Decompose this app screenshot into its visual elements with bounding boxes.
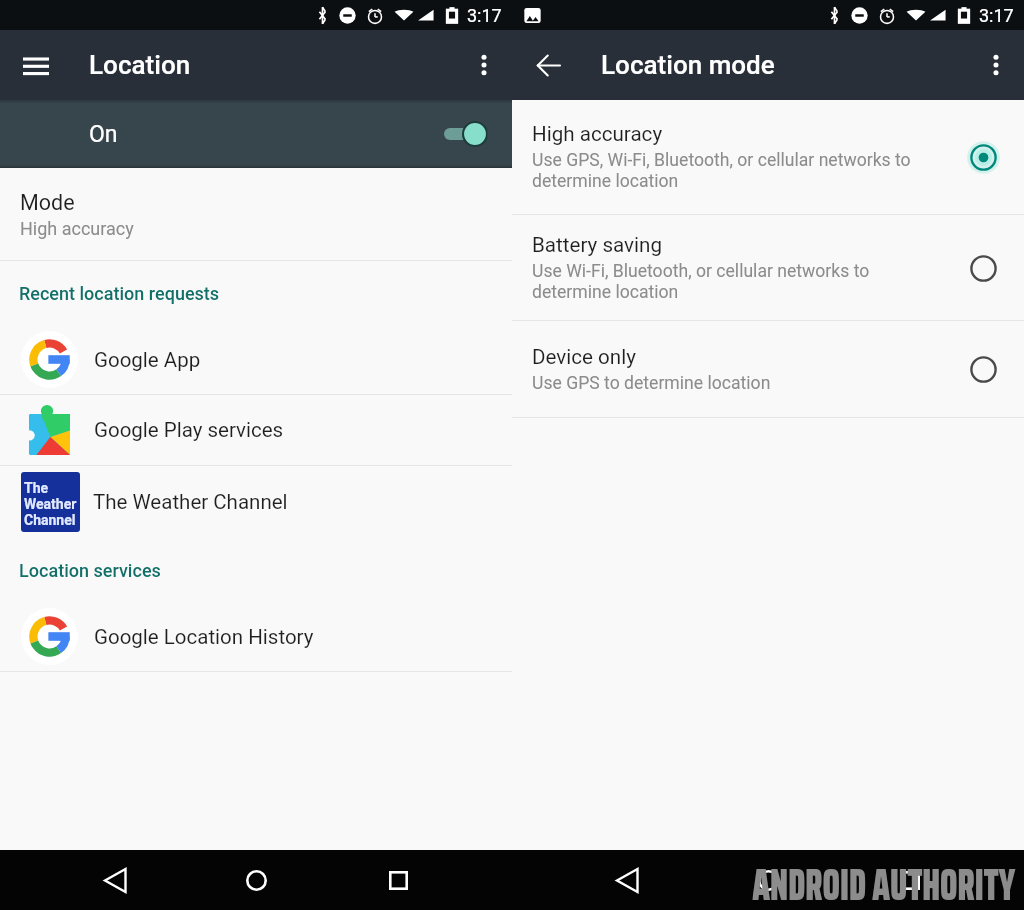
button[interactable]: Recent apps bbox=[371, 853, 425, 907]
staticText: The Weather Channel bbox=[93, 490, 288, 514]
staticText: ANDROID AUTHORITY bbox=[752, 850, 1016, 910]
staticText: Google Location History bbox=[94, 625, 314, 649]
button[interactable]: Mode bbox=[0, 168, 512, 260]
button[interactable]: Back bbox=[600, 853, 654, 907]
button[interactable]: Device only bbox=[512, 321, 1024, 417]
staticText: Location services bbox=[19, 560, 161, 581]
button[interactable]: Google Play services bbox=[0, 395, 512, 465]
button[interactable]: More options bbox=[462, 43, 506, 87]
staticText: Use GPS to determine location bbox=[532, 373, 771, 394]
staticText: 3:17 bbox=[467, 5, 502, 26]
staticText: High accuracy bbox=[532, 122, 663, 146]
staticText: determine location bbox=[532, 171, 679, 192]
staticText: Google Play services bbox=[94, 418, 284, 442]
button[interactable]: Battery saving bbox=[512, 215, 1024, 320]
button[interactable]: On bbox=[0, 100, 512, 168]
button[interactable]: The bbox=[0, 466, 512, 538]
staticText: Battery saving bbox=[532, 233, 663, 257]
staticText: High accuracy bbox=[20, 218, 134, 239]
staticText: On bbox=[89, 121, 118, 148]
staticText: 3:17 bbox=[979, 5, 1014, 26]
button[interactable]: Navigate up bbox=[526, 43, 570, 87]
staticText: Weather bbox=[24, 496, 77, 512]
staticText: determine location bbox=[532, 282, 679, 303]
button[interactable]: Back bbox=[88, 853, 142, 907]
staticText: Recent location requests bbox=[19, 283, 220, 304]
staticText: Mode bbox=[20, 190, 75, 215]
button[interactable]: Recent apps bbox=[883, 853, 937, 907]
staticText: Channel bbox=[24, 512, 76, 528]
button[interactable]: More options bbox=[974, 43, 1018, 87]
staticText: Location mode bbox=[601, 50, 775, 80]
staticText: Use GPS, Wi-Fi, Bluetooth, or cellular n… bbox=[532, 150, 911, 171]
staticText: Use Wi-Fi, Bluetooth, or cellular networ… bbox=[532, 261, 870, 282]
button[interactable]: High accuracy bbox=[512, 100, 1024, 214]
button[interactable]: Open navigation menu bbox=[14, 43, 58, 87]
button[interactable]: Google App bbox=[0, 325, 512, 394]
button[interactable]: Home bbox=[741, 853, 795, 907]
staticText: Location bbox=[89, 50, 191, 80]
staticText: Device only bbox=[532, 345, 636, 369]
staticText: Google App bbox=[94, 348, 201, 372]
button[interactable]: Home bbox=[229, 853, 283, 907]
button[interactable]: Google Location History bbox=[0, 602, 512, 671]
staticText: The bbox=[24, 480, 49, 496]
